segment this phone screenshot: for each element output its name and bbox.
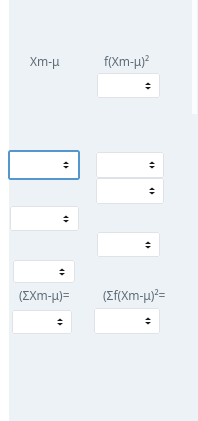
button[interactable]: Number input bbox=[8, 150, 80, 180]
button[interactable]: Number input bbox=[97, 232, 160, 257]
button[interactable]: Number input bbox=[96, 152, 164, 178]
button[interactable]: Number input bbox=[94, 308, 160, 334]
staticText: (ΣXm-μ)= bbox=[19, 287, 70, 303]
staticText: Xm-μ bbox=[30, 53, 60, 69]
button[interactable]: Number input bbox=[96, 178, 164, 204]
button[interactable]: Number input bbox=[12, 310, 72, 334]
button[interactable]: Number input bbox=[10, 206, 79, 231]
staticText: f(Xm-μ)² bbox=[104, 53, 150, 69]
button[interactable]: Number input bbox=[13, 260, 75, 283]
staticText: (Σf(Xm-μ)²= bbox=[103, 287, 166, 303]
button[interactable]: Number input bbox=[97, 73, 160, 98]
